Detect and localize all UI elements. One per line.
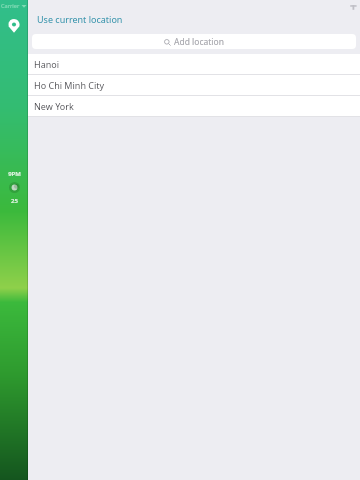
staticText: 25: [11, 197, 18, 205]
button[interactable]: Hanoi: [28, 54, 360, 74]
staticText: Add location: [174, 36, 224, 48]
staticText: Use current location: [37, 13, 123, 25]
button[interactable]: Weather 9PM 25 degrees: [0, 170, 28, 205]
staticText: Hanoi: [34, 58, 60, 70]
button[interactable]: Use current location: [28, 12, 360, 27]
button[interactable]: New York: [28, 96, 360, 116]
button[interactable]: Ho Chi Minh City: [28, 75, 360, 95]
button[interactable]: Current location: [4, 16, 24, 36]
staticText: Carrier: [1, 2, 20, 9]
button[interactable]: Add location: [32, 34, 356, 49]
staticText: 9PM: [8, 170, 21, 178]
staticText: New York: [34, 100, 74, 112]
staticText: Ho Chi Minh City: [34, 79, 105, 91]
